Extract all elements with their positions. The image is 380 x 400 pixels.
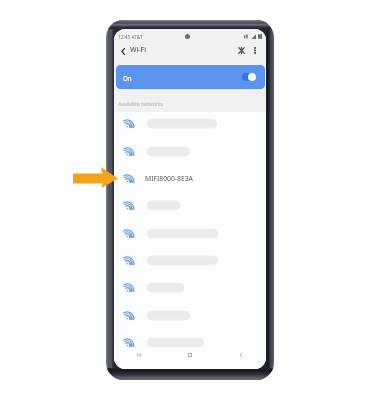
button[interactable]: On xyxy=(116,65,265,89)
staticText: Wi-Fi xyxy=(130,45,147,54)
button[interactable] xyxy=(114,138,266,165)
staticText: On xyxy=(123,74,132,82)
button[interactable] xyxy=(114,247,266,274)
button[interactable]: MIFI8000-8E3A xyxy=(114,165,266,192)
button[interactable]: Back xyxy=(215,347,266,369)
button[interactable] xyxy=(114,220,266,247)
staticText: Available networks xyxy=(118,101,164,108)
button[interactable] xyxy=(114,274,266,301)
staticText: 12:45 AT&T xyxy=(118,34,143,41)
button[interactable] xyxy=(114,302,266,329)
button[interactable] xyxy=(114,329,266,356)
button[interactable]: More options xyxy=(248,44,261,57)
button[interactable] xyxy=(114,110,266,137)
button[interactable] xyxy=(114,192,266,219)
button[interactable]: Home xyxy=(164,347,215,369)
staticText: MIFI8000-8E3A xyxy=(145,174,193,183)
button[interactable]: Scan QR code xyxy=(235,44,248,57)
other: Pointer arrow xyxy=(73,167,118,188)
button[interactable]: Recent apps xyxy=(114,347,164,369)
button[interactable]: Back xyxy=(116,44,130,58)
